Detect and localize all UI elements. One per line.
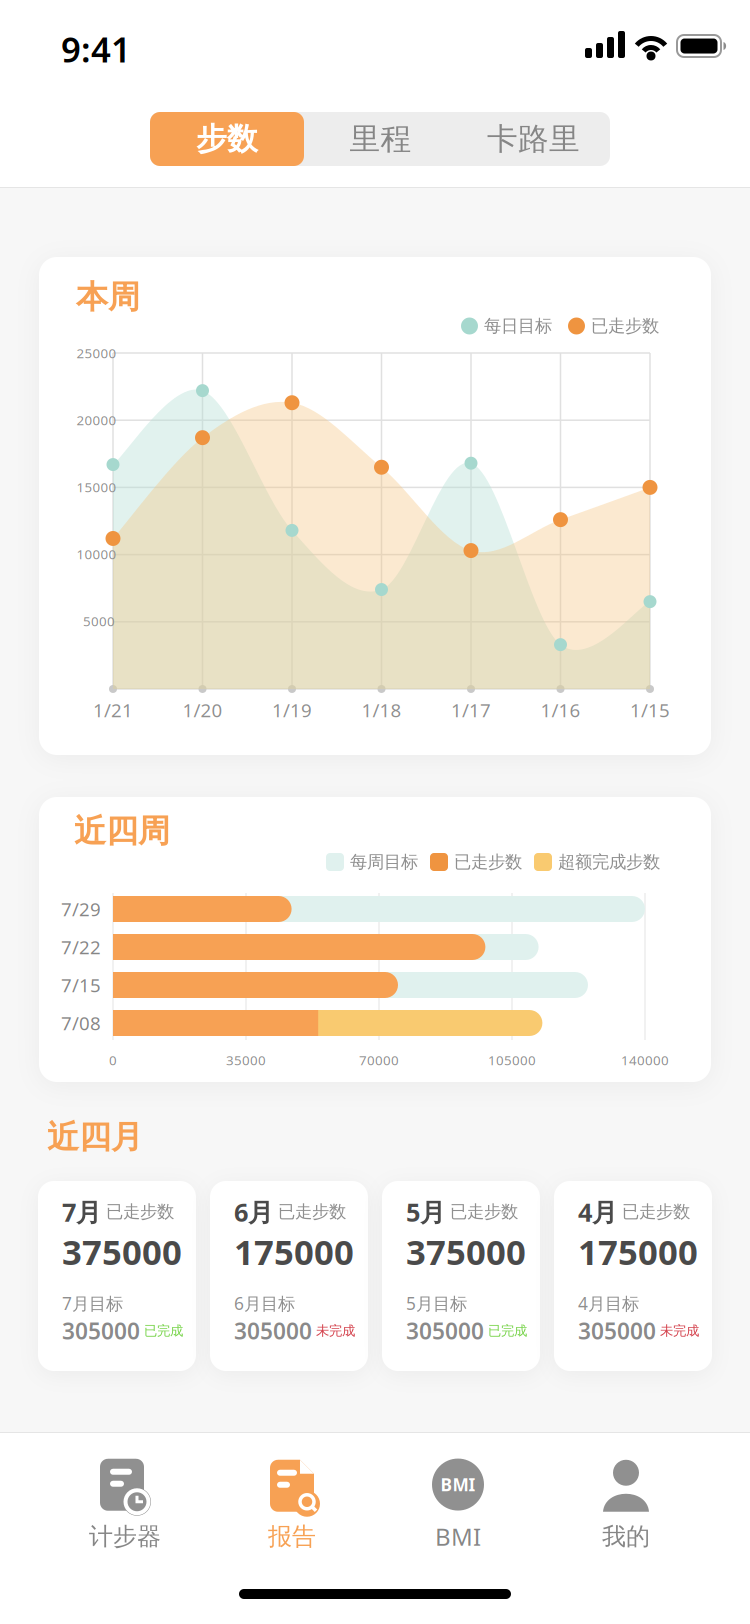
button[interactable]: 里程	[304, 112, 457, 166]
staticText: 卡路里	[487, 120, 580, 158]
staticText: 375000	[406, 1229, 526, 1275]
staticText: 6月目标	[234, 1292, 295, 1315]
staticText: 每日目标	[484, 315, 552, 337]
staticText: 近四周	[74, 811, 170, 851]
staticText: 305000	[406, 1316, 484, 1346]
staticText: 305000	[234, 1316, 312, 1346]
staticText: 1/16	[540, 698, 580, 722]
staticText: 已走步数	[454, 851, 522, 873]
staticText: 7/08	[61, 1011, 101, 1035]
staticText: 已完成	[488, 1323, 527, 1339]
staticText: 175000	[578, 1229, 698, 1275]
staticText: 未完成	[660, 1323, 699, 1339]
staticText: 报告	[268, 1522, 316, 1551]
staticText: 9:41	[61, 26, 131, 72]
staticText: 我的	[602, 1522, 650, 1551]
staticText: 步数	[196, 120, 258, 158]
staticText: 已走步数	[591, 315, 659, 337]
button[interactable]: BMI	[383, 1455, 533, 1555]
staticText: 1/20	[182, 698, 222, 722]
staticText: 35000	[226, 1051, 266, 1069]
staticText: 4月	[578, 1195, 617, 1229]
staticText: 70000	[359, 1051, 399, 1069]
staticText: 已走步数	[278, 1201, 346, 1222]
staticText: 305000	[578, 1316, 656, 1346]
staticText: 里程	[349, 120, 411, 158]
staticText: 20000	[76, 411, 116, 429]
staticText: 4月目标	[578, 1292, 639, 1315]
staticText: 5月	[406, 1195, 445, 1229]
button[interactable]: 卡路里	[457, 112, 610, 166]
staticText: 7月	[62, 1195, 101, 1229]
staticText: 未完成	[316, 1323, 355, 1339]
staticText: 25000	[76, 344, 116, 362]
staticText: 近四月	[47, 1117, 143, 1157]
staticText: 1/21	[93, 698, 133, 722]
staticText: 7/29	[61, 897, 101, 921]
staticText: 10000	[76, 545, 116, 563]
staticText: 7月目标	[62, 1292, 123, 1315]
staticText: 1/18	[361, 698, 401, 722]
staticText: 5月目标	[406, 1292, 467, 1315]
staticText: 140000	[621, 1051, 669, 1069]
button[interactable]: 计步器	[50, 1455, 200, 1555]
button[interactable]: 步数	[150, 112, 304, 166]
staticText: 6月	[234, 1195, 273, 1229]
staticText: 175000	[234, 1229, 354, 1275]
staticText: 1/15	[630, 698, 670, 722]
staticText: 超额完成步数	[558, 851, 660, 873]
staticText: 1/17	[451, 698, 491, 722]
staticText: 已走步数	[450, 1201, 518, 1222]
staticText: 0	[109, 1051, 117, 1069]
staticText: 15000	[76, 478, 116, 496]
staticText: 已走步数	[106, 1201, 174, 1222]
button[interactable]: 报告	[217, 1455, 367, 1555]
button[interactable]: 我的	[551, 1455, 701, 1555]
staticText: 105000	[488, 1051, 536, 1069]
staticText: 已走步数	[622, 1201, 690, 1222]
staticText: BMI	[440, 1473, 475, 1496]
staticText: 375000	[62, 1229, 182, 1275]
staticText: 1/19	[272, 698, 312, 722]
staticText: 本周	[76, 277, 140, 317]
staticText: 5000	[83, 612, 115, 630]
staticText: 7/22	[61, 935, 101, 959]
staticText: 305000	[62, 1316, 140, 1346]
staticText: 每周目标	[350, 851, 418, 873]
staticText: 计步器	[89, 1522, 161, 1551]
staticText: BMI	[435, 1521, 481, 1552]
staticText: 7/15	[61, 973, 101, 997]
staticText: 已完成	[144, 1323, 183, 1339]
